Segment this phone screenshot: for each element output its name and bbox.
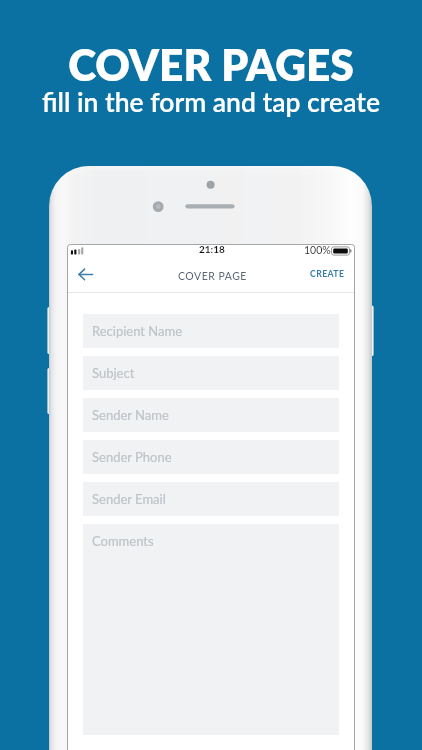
staticText: Sender Phone xyxy=(92,449,172,465)
button[interactable]: CREATE xyxy=(310,268,345,278)
staticText: COVER PAGES xyxy=(68,39,354,90)
staticText: Comments xyxy=(92,533,154,549)
staticText: COVER PAGE xyxy=(178,270,247,283)
staticText: Sender Name xyxy=(92,407,169,423)
staticText: fill in the form and tap create xyxy=(42,86,380,118)
staticText: 100% xyxy=(304,244,331,257)
button[interactable]: Sender Email xyxy=(83,482,339,516)
staticText: Recipient Name xyxy=(92,323,183,339)
button[interactable]: Back xyxy=(75,259,105,289)
staticText: CREATE xyxy=(310,268,345,278)
staticText: 21:18 xyxy=(199,244,225,255)
button[interactable]: Sender Phone xyxy=(83,440,339,474)
button[interactable]: Recipient Name xyxy=(83,314,339,348)
button[interactable]: Sender Name xyxy=(83,398,339,432)
staticText: Subject xyxy=(92,365,135,381)
button[interactable]: Subject xyxy=(83,356,339,390)
staticText: Sender Email xyxy=(92,491,166,507)
